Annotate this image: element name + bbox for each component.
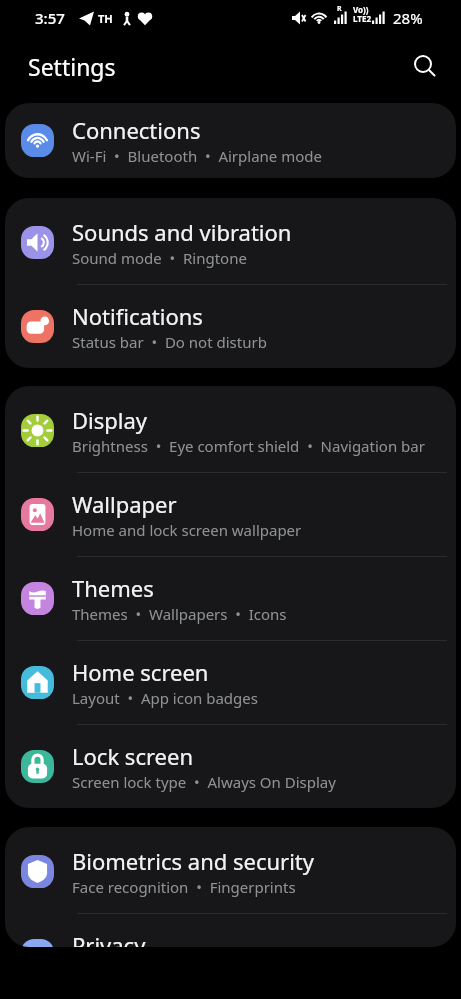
staticText: Status bar • Do not disturb: [72, 332, 267, 352]
staticText: Home and lock screen wallpaper: [72, 520, 302, 540]
staticText: Brightness • Eye comfort shield • Naviga…: [72, 436, 425, 456]
staticText: Settings: [28, 51, 116, 82]
staticText: Sound mode • Ringtone: [72, 248, 247, 268]
staticText: TH: [98, 11, 113, 26]
staticText: Wi-Fi • Bluetooth • Airplane mode: [72, 146, 322, 166]
staticText: Layout • App icon badges: [72, 688, 258, 708]
staticText: Home screen: [72, 657, 209, 687]
staticText: 3:57: [35, 8, 65, 28]
staticText: Biometrics and security: [72, 846, 315, 876]
staticText: Screen lock type • Always On Display: [72, 772, 336, 792]
staticText: Display: [72, 405, 148, 435]
staticText: Lock screen: [72, 741, 194, 771]
staticText: Privacy: [72, 930, 146, 947]
button[interactable]: Lock screen: [5, 725, 456, 808]
staticText: Connections: [72, 115, 201, 145]
button[interactable]: Wallpaper: [5, 473, 456, 556]
staticText: Notifications: [72, 301, 203, 331]
button[interactable]: Privacy: [5, 914, 456, 947]
staticText: Themes • Wallpapers • Icons: [72, 604, 287, 624]
staticText: Sounds and vibration: [72, 217, 292, 247]
staticText: Wallpaper: [72, 489, 177, 519]
button[interactable]: Sounds and vibration: [5, 201, 456, 284]
staticText: Vo)): [353, 4, 369, 15]
button[interactable]: Connections: [5, 103, 456, 178]
button[interactable]: Home screen: [5, 641, 456, 724]
staticText: Themes: [72, 573, 154, 603]
button[interactable]: [405, 46, 445, 86]
staticText: LTE2: [353, 13, 371, 24]
button[interactable]: Themes: [5, 557, 456, 640]
button[interactable]: Biometrics and security: [5, 830, 456, 913]
staticText: 28%: [393, 8, 423, 28]
button[interactable]: Display: [5, 389, 456, 472]
staticText: R: [337, 4, 342, 14]
staticText: Face recognition • Fingerprints: [72, 877, 296, 897]
button[interactable]: Notifications: [5, 285, 456, 368]
